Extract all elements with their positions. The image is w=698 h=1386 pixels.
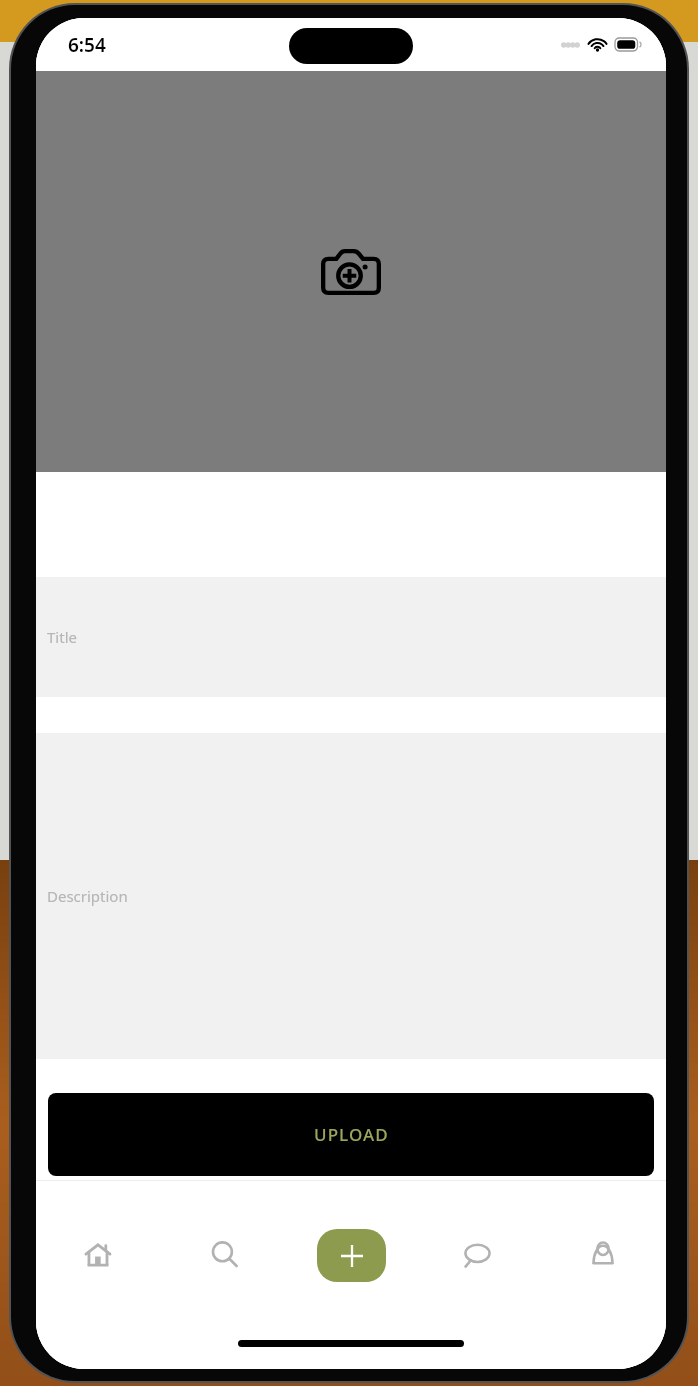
button[interactable]: Profile — [540, 1181, 666, 1329]
staticText: Description — [47, 886, 128, 906]
staticText: Title — [47, 627, 77, 647]
button[interactable]: UPLOAD — [48, 1093, 654, 1176]
staticText: UPLOAD — [314, 1123, 389, 1146]
staticText: 6:54 — [68, 32, 106, 58]
button[interactable]: Search — [162, 1181, 288, 1329]
button[interactable]: Create post — [317, 1229, 386, 1282]
button[interactable]: Add photo — [36, 71, 666, 472]
button[interactable]: Messages — [414, 1181, 540, 1329]
button[interactable]: Home — [36, 1181, 162, 1329]
